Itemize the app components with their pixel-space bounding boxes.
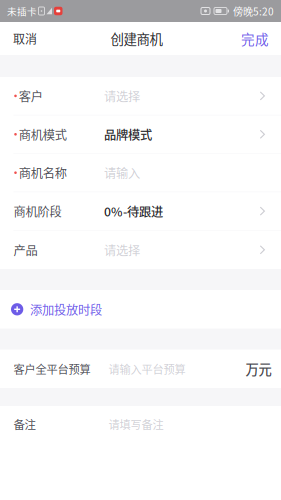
staticText: 请输入平台预算 — [108, 361, 185, 377]
staticText: 商机名称 — [19, 164, 67, 182]
button[interactable]: 客户 — [0, 77, 281, 115]
button[interactable]: 产品 — [0, 231, 281, 269]
button[interactable]: 备注 — [0, 406, 281, 442]
staticText: 客户 — [19, 87, 43, 105]
button[interactable]: 添加投放时段 — [0, 290, 281, 329]
button[interactable]: 取消 — [0, 22, 50, 55]
staticText: 商机模式 — [19, 125, 67, 143]
staticText: 请输入 — [104, 164, 140, 182]
staticText: 添加投放时段 — [30, 300, 102, 318]
staticText: 0%-待跟进 — [104, 202, 163, 220]
staticText: 客户全平台预算 — [13, 361, 90, 377]
button[interactable]: 完成 — [228, 22, 281, 55]
staticText: 未插卡 — [7, 4, 37, 18]
staticText: 备注 — [13, 416, 35, 432]
staticText: 产品 — [13, 241, 37, 259]
staticText: 请填写备注 — [108, 416, 163, 432]
button[interactable]: 商机阶段 — [0, 192, 281, 231]
staticText: 完成 — [241, 29, 269, 48]
staticText: 取消 — [13, 30, 37, 47]
button[interactable]: 商机名称 — [0, 154, 281, 192]
staticText: 傍晚5:20 — [233, 4, 274, 18]
staticText: 请选择 — [104, 87, 140, 105]
staticText: 万元 — [245, 359, 271, 378]
staticText: 品牌模式 — [104, 125, 152, 143]
button[interactable]: 商机模式 — [0, 115, 281, 154]
staticText: 商机阶段 — [13, 202, 61, 220]
button[interactable]: 客户全平台预算 — [0, 350, 281, 388]
staticText: 创建商机 — [110, 29, 162, 48]
staticText: 请选择 — [104, 241, 140, 259]
